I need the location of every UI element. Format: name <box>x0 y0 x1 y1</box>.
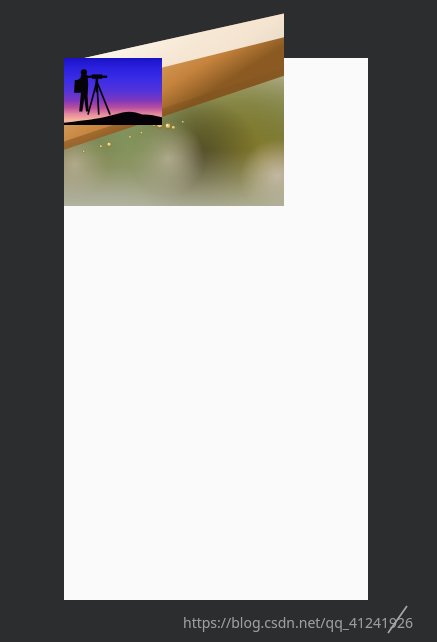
button[interactable]: Photographer silhouette at dusk <box>64 58 162 125</box>
staticText: https://blog.csdn.net/qq_41241926 <box>183 613 414 632</box>
button[interactable]: Macro photo of dew drops on a blade <box>64 58 284 206</box>
